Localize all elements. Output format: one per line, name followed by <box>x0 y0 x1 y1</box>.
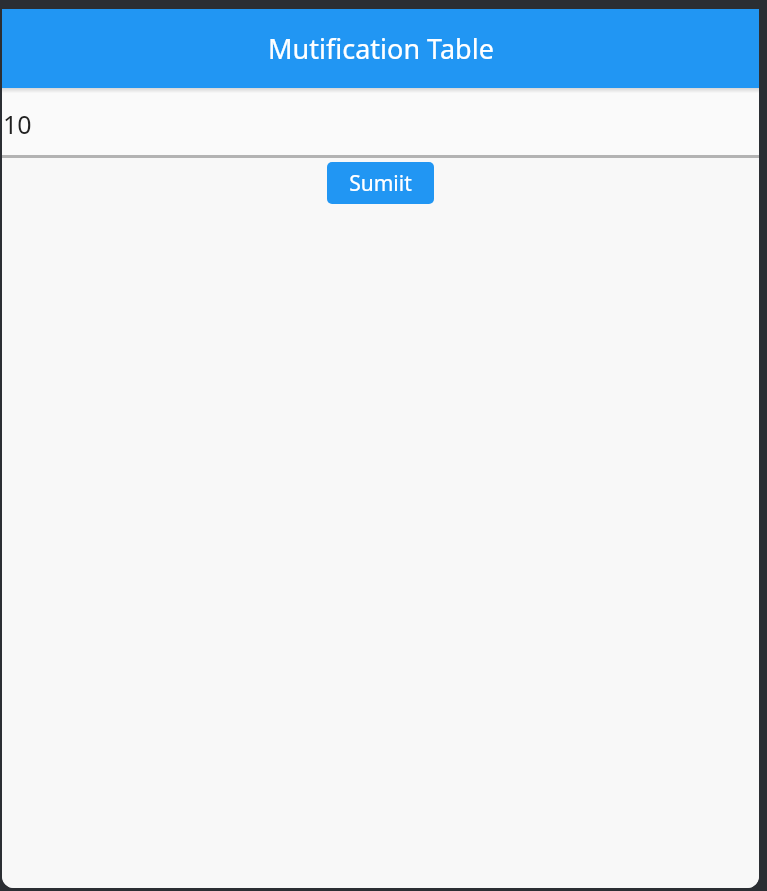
staticText: Mutification Table <box>268 30 494 67</box>
staticText: Sumiit <box>349 169 412 198</box>
button[interactable]: 10 <box>2 93 759 158</box>
button[interactable]: Sumiit <box>327 162 434 204</box>
staticText: 10 <box>3 107 32 141</box>
